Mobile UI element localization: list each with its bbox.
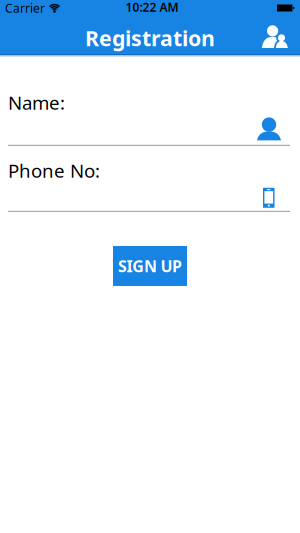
staticText: Name:	[8, 90, 65, 115]
staticText: Carrier	[5, 0, 45, 16]
staticText: Registration	[85, 24, 215, 52]
button[interactable]: Contacts	[261, 25, 290, 49]
staticText: Phone No:	[8, 158, 100, 183]
button[interactable]: SIGN UP	[113, 246, 187, 286]
staticText: 10:22 AM	[125, 0, 178, 15]
staticText: SIGN UP	[118, 255, 182, 277]
